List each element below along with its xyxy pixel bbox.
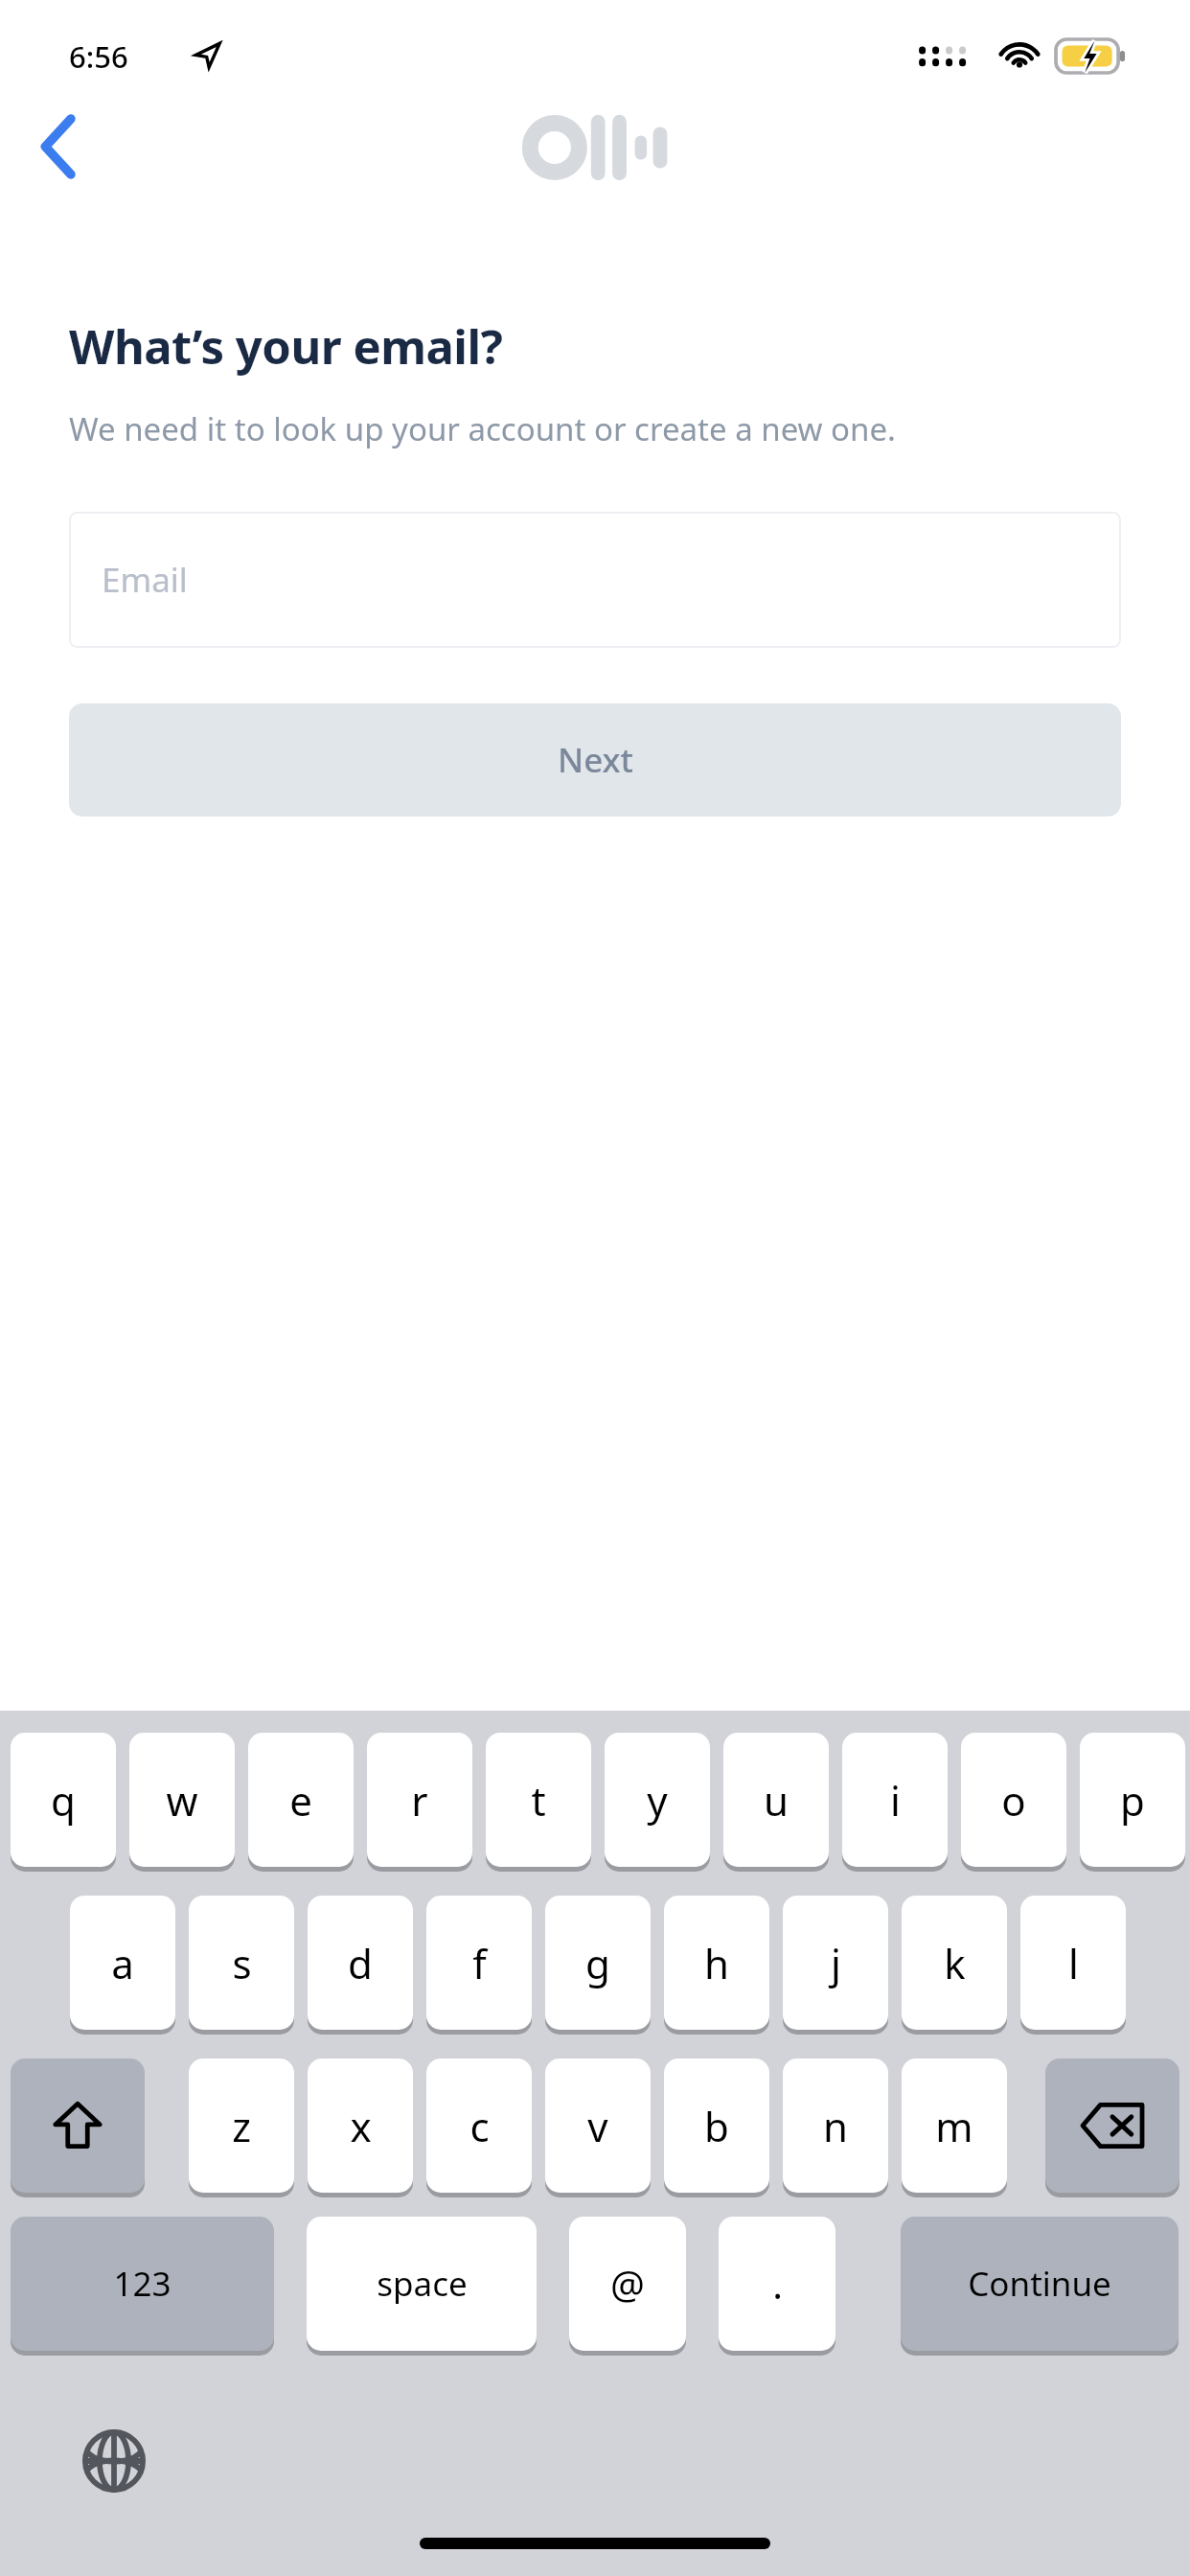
button[interactable]: g bbox=[545, 1896, 651, 2030]
button[interactable]: Continue bbox=[901, 2217, 1179, 2351]
staticText: l bbox=[1068, 1936, 1079, 1990]
button[interactable]: Backspace bbox=[1045, 2058, 1179, 2193]
staticText: u bbox=[764, 1773, 789, 1828]
button[interactable]: b bbox=[664, 2058, 769, 2193]
button[interactable]: x bbox=[308, 2058, 413, 2193]
button[interactable]: m bbox=[902, 2058, 1007, 2193]
staticText: e bbox=[289, 1773, 312, 1828]
staticText: g bbox=[585, 1936, 610, 1990]
button[interactable]: . bbox=[719, 2217, 835, 2351]
button[interactable]: Shift bbox=[11, 2058, 145, 2193]
staticText: f bbox=[472, 1936, 487, 1990]
staticText: z bbox=[232, 2099, 251, 2153]
staticText: o bbox=[1001, 1773, 1026, 1828]
button[interactable]: a bbox=[70, 1896, 175, 2030]
button[interactable]: r bbox=[367, 1733, 472, 1867]
staticText: What’s your email? bbox=[69, 314, 503, 379]
staticText: x bbox=[350, 2099, 372, 2153]
staticText: p bbox=[1120, 1773, 1145, 1828]
button[interactable]: 123 bbox=[11, 2217, 274, 2351]
staticText: Continue bbox=[968, 2261, 1111, 2307]
button[interactable]: k bbox=[902, 1896, 1007, 2030]
staticText: space bbox=[377, 2261, 468, 2307]
staticText: c bbox=[469, 2099, 490, 2153]
staticText: We need it to look up your account or cr… bbox=[69, 407, 896, 450]
staticText: r bbox=[411, 1773, 428, 1828]
staticText: h bbox=[704, 1936, 729, 1990]
button[interactable]: q bbox=[11, 1733, 116, 1867]
staticText: t bbox=[531, 1773, 546, 1828]
button[interactable]: e bbox=[248, 1733, 354, 1867]
staticText: q bbox=[51, 1773, 76, 1828]
staticText: i bbox=[890, 1773, 901, 1828]
staticText: 123 bbox=[113, 2261, 172, 2307]
button[interactable]: @ bbox=[569, 2217, 686, 2351]
button[interactable]: Email bbox=[69, 512, 1121, 648]
staticText: s bbox=[232, 1936, 252, 1990]
staticText: 6:56 bbox=[69, 36, 128, 77]
button[interactable]: w bbox=[129, 1733, 235, 1867]
button[interactable]: z bbox=[189, 2058, 294, 2193]
button[interactable]: n bbox=[783, 2058, 888, 2193]
staticText: j bbox=[831, 1936, 841, 1990]
staticText: Next bbox=[558, 737, 633, 783]
button[interactable]: y bbox=[605, 1733, 710, 1867]
button[interactable]: space bbox=[307, 2217, 537, 2351]
staticText: w bbox=[166, 1773, 198, 1828]
button[interactable]: t bbox=[486, 1733, 591, 1867]
button[interactable]: d bbox=[308, 1896, 413, 2030]
button[interactable]: v bbox=[545, 2058, 651, 2193]
button[interactable]: Switch keyboard language bbox=[73, 2420, 155, 2502]
staticText: b bbox=[704, 2099, 729, 2153]
button[interactable]: p bbox=[1080, 1733, 1185, 1867]
button[interactable]: j bbox=[783, 1896, 888, 2030]
button[interactable]: o bbox=[961, 1733, 1066, 1867]
button[interactable]: s bbox=[189, 1896, 294, 2030]
button[interactable]: u bbox=[723, 1733, 829, 1867]
staticText: n bbox=[823, 2099, 848, 2153]
staticText: k bbox=[944, 1936, 966, 1990]
button[interactable]: l bbox=[1020, 1896, 1126, 2030]
button[interactable]: c bbox=[426, 2058, 532, 2193]
button[interactable]: f bbox=[426, 1896, 532, 2030]
button[interactable]: i bbox=[842, 1733, 948, 1867]
staticText: d bbox=[348, 1936, 373, 1990]
button[interactable]: h bbox=[664, 1896, 769, 2030]
staticText: Email bbox=[102, 557, 188, 603]
staticText: y bbox=[647, 1773, 668, 1828]
staticText: v bbox=[587, 2099, 608, 2153]
staticText: . bbox=[772, 2258, 783, 2310]
button[interactable]: Back bbox=[17, 105, 100, 188]
button[interactable]: Next bbox=[69, 703, 1121, 816]
staticText: m bbox=[935, 2099, 973, 2153]
staticText: @ bbox=[610, 2258, 645, 2310]
staticText: a bbox=[111, 1936, 134, 1990]
